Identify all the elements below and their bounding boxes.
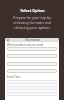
button[interactable]: One hour more — [7, 80, 57, 84]
button[interactable]: Two hours more — [7, 86, 57, 90]
staticText: Which products do you need — [7, 43, 44, 47]
button[interactable]: Half day extra — [7, 92, 57, 96]
staticText: One hour more — [8, 81, 26, 84]
staticText: Half day extra — [8, 93, 24, 96]
staticText: Airport pickup — [8, 63, 24, 66]
button[interactable]: Airport pickup — [7, 62, 57, 66]
button[interactable]: Meal plan — [7, 69, 57, 73]
staticText: Select Option — [20, 8, 45, 13]
button[interactable]: Reservation — [5, 38, 59, 42]
staticText: Two hours more — [8, 87, 27, 90]
staticText: Daily transfer — [8, 55, 24, 58]
staticText: Extra Time — [7, 75, 21, 79]
staticText: Prepare for your trip by reviewing the t… — [7, 15, 57, 30]
staticText: Hotel room — [8, 48, 21, 51]
button[interactable]: Daily transfer — [7, 54, 57, 58]
button[interactable]: Hotel room — [7, 47, 57, 51]
staticText: Meal plan — [8, 70, 20, 73]
staticText: Reservation — [25, 38, 40, 42]
